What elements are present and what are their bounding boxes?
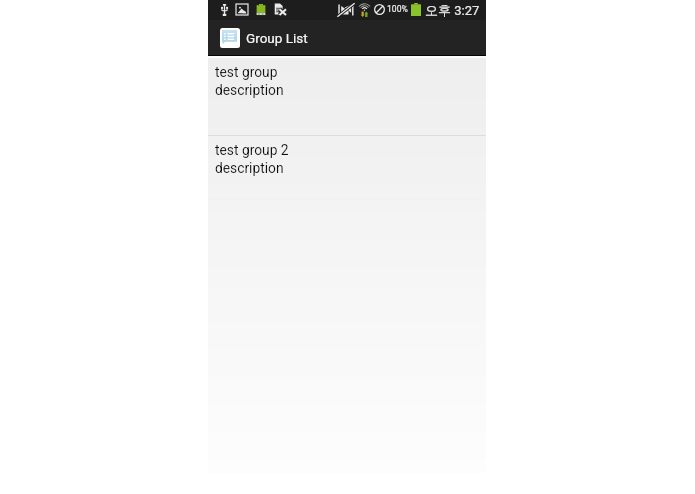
- button[interactable]: test group 2: [208, 136, 486, 199]
- button[interactable]: Group List app icon, navigate up: [208, 20, 318, 55]
- staticText: test group 2: [215, 142, 289, 158]
- staticText: description: [215, 82, 284, 98]
- other: Group List app icon, navigate up: [220, 28, 240, 48]
- staticText: test group: [215, 64, 278, 80]
- staticText: description: [215, 160, 284, 176]
- staticText: Group List: [246, 30, 308, 46]
- staticText: 100%: [387, 4, 408, 14]
- staticText: 오후 3:27: [425, 2, 480, 18]
- button[interactable]: test group: [208, 58, 486, 135]
